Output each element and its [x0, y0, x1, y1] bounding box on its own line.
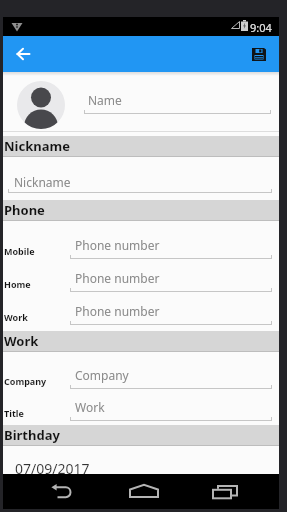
button[interactable]: Nickname	[8, 167, 274, 197]
staticText: Phone number	[75, 303, 160, 319]
staticText: Phone number	[75, 270, 160, 286]
button[interactable]: Name	[84, 84, 274, 116]
staticText: Nickname	[14, 174, 71, 190]
button[interactable]: Phone number	[70, 234, 274, 262]
staticText: Phone	[4, 201, 45, 219]
staticText: Company	[75, 367, 129, 383]
button[interactable]: Phone number	[70, 300, 274, 328]
button[interactable]	[243, 36, 279, 72]
staticText: Work	[4, 311, 28, 323]
staticText: Mobile	[4, 245, 35, 257]
staticText: Work	[4, 332, 39, 350]
button[interactable]	[17, 81, 65, 129]
staticText: Nickname	[4, 137, 70, 155]
staticText: 9:04	[250, 20, 272, 35]
button[interactable]: Work	[70, 396, 274, 424]
staticText: Birthday	[4, 426, 60, 444]
staticText: Name	[88, 92, 122, 108]
button[interactable]	[3, 36, 49, 72]
button[interactable]	[195, 474, 251, 509]
button[interactable]: Company	[70, 364, 274, 392]
staticText: Title	[4, 407, 24, 419]
button[interactable]	[116, 474, 172, 509]
staticText: Phone number	[75, 237, 160, 253]
staticText: 07/09/2017	[15, 459, 90, 476]
staticText: Work	[75, 399, 105, 415]
button[interactable]: 07/09/2017	[13, 457, 273, 474]
staticText: Home	[4, 278, 31, 290]
staticText: Company	[4, 375, 47, 387]
button[interactable]: Phone number	[70, 267, 274, 295]
button[interactable]	[36, 474, 92, 509]
